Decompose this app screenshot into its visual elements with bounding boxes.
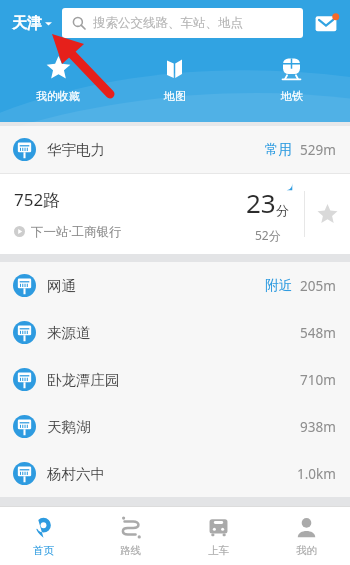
staticText: 卧龙潭庄园 <box>47 371 120 389</box>
staticText: 华宇电力 <box>47 141 105 159</box>
button[interactable]: 首页 <box>0 507 87 565</box>
button[interactable]: 天鹅湖 <box>0 403 350 450</box>
staticText: 我的收藏 <box>36 89 80 103</box>
staticText: 529m <box>300 141 336 159</box>
staticText: 路线 <box>120 544 141 557</box>
staticText: 548m <box>300 324 336 342</box>
button[interactable]: 752路 <box>0 174 350 254</box>
staticText: 常用 <box>265 141 292 158</box>
button[interactable]: 地图 <box>116 46 233 113</box>
button[interactable]: 我的收藏 <box>0 46 116 113</box>
staticText: 205m <box>300 277 336 295</box>
staticText: 938m <box>300 418 336 436</box>
button[interactable]: Favourite <box>305 174 350 254</box>
button[interactable]: 卧龙潭庄园 <box>0 356 350 403</box>
staticText: 首页 <box>33 544 54 557</box>
staticText: 附近 <box>265 277 292 294</box>
staticText: 23 <box>246 185 276 220</box>
button[interactable]: Messages <box>310 7 342 39</box>
button[interactable]: 路线 <box>87 507 174 565</box>
button[interactable]: 杨村六中 <box>0 450 350 497</box>
button[interactable]: 天津 <box>8 10 56 37</box>
staticText: 分 <box>276 202 289 218</box>
button[interactable]: 来源道 <box>0 309 350 356</box>
staticText: 来源道 <box>47 324 91 342</box>
button[interactable]: 我的 <box>262 507 350 565</box>
button[interactable]: 上车 <box>174 507 262 565</box>
staticText: 网通 <box>47 277 76 295</box>
staticText: 杨村六中 <box>47 465 105 483</box>
staticText: 我的 <box>296 544 317 557</box>
staticText: 710m <box>300 371 336 389</box>
staticText: 1.0km <box>297 465 336 483</box>
staticText: 上车 <box>208 544 229 557</box>
staticText: 搜索公交线路、车站、地点 <box>93 15 243 31</box>
button[interactable]: 华宇电力 <box>0 126 350 173</box>
staticText: 752路 <box>14 188 61 211</box>
button[interactable]: 地铁 <box>233 46 350 113</box>
staticText: 天津 <box>12 14 42 33</box>
staticText: 地图 <box>164 89 186 103</box>
button[interactable]: 搜索公交线路、车站、地点 <box>62 8 303 38</box>
staticText: 下一站·工商银行 <box>31 223 122 240</box>
staticText: 地铁 <box>281 89 303 103</box>
staticText: 天鹅湖 <box>47 418 91 436</box>
staticText: 52分 <box>255 227 281 243</box>
button[interactable]: 网通 <box>0 262 350 309</box>
